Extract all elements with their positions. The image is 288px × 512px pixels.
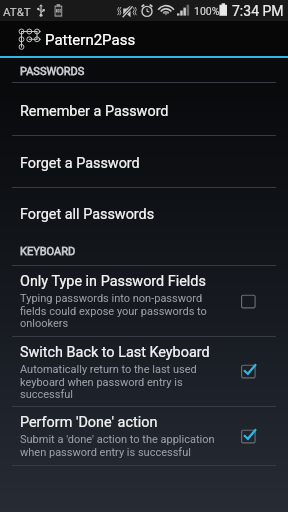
staticText: Forget a Password bbox=[20, 155, 140, 172]
staticText: Forget all Passwords bbox=[20, 206, 155, 223]
staticText: Only Type in Password Fields bbox=[20, 273, 206, 290]
staticText: Pattern2Pass bbox=[45, 31, 136, 49]
button[interactable]: Only Type in Password Fields bbox=[0, 266, 288, 336]
button[interactable]: Remember a Password bbox=[0, 83, 288, 135]
other: Unchecked bbox=[240, 294, 258, 309]
other: Pattern2Pass bbox=[19, 29, 40, 49]
staticText: Remember a Password bbox=[20, 103, 169, 120]
button[interactable]: Forget a Password bbox=[0, 136, 288, 187]
staticText: Automatically return to the last used ke… bbox=[20, 363, 228, 400]
staticText: 100% bbox=[194, 5, 220, 17]
staticText: Typing passwords into non-password field… bbox=[20, 292, 228, 329]
other: Checked bbox=[240, 429, 258, 444]
staticText: Perform 'Done' action bbox=[20, 414, 158, 431]
staticText: AT&T bbox=[3, 5, 31, 18]
staticText: KEYBOARD bbox=[20, 245, 76, 258]
staticText: Submit a 'done' action to the applicatio… bbox=[20, 433, 228, 458]
other: Checked bbox=[240, 364, 258, 379]
button[interactable]: Perform 'Done' action bbox=[0, 407, 288, 465]
staticText: PASSWORDS bbox=[20, 65, 85, 78]
button[interactable]: Forget all Passwords bbox=[0, 188, 288, 239]
staticText: Switch Back to Last Keyboard bbox=[20, 344, 210, 361]
button[interactable]: Switch Back to Last Keyboard bbox=[0, 337, 288, 406]
staticText: 7:34 PM bbox=[232, 3, 284, 19]
button[interactable]: Pattern2Pass bbox=[0, 21, 288, 56]
